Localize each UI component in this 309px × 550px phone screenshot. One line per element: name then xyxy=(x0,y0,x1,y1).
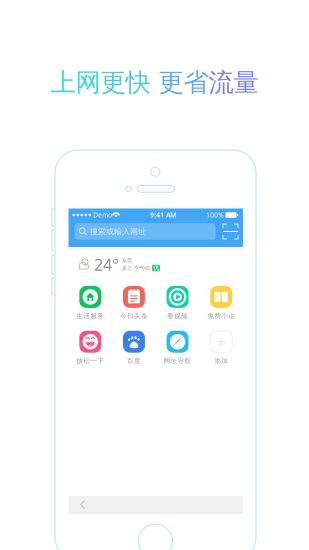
button[interactable]: 看视频 xyxy=(156,286,199,319)
staticText: 百度 xyxy=(127,357,141,365)
staticText: 搜索或输入网址 xyxy=(90,227,146,236)
staticText: 更省 xyxy=(158,67,208,98)
button[interactable]: 放松一下 xyxy=(68,331,112,364)
button[interactable]: 生活服务 xyxy=(68,286,112,319)
staticText: 24° xyxy=(94,254,119,275)
staticText: 100% xyxy=(206,211,224,219)
button[interactable]: Back xyxy=(68,496,97,513)
button[interactable]: 免费小说 xyxy=(199,286,243,319)
staticText: 多云 空气65 xyxy=(122,264,150,272)
button[interactable]: Scan QR code xyxy=(223,224,238,239)
staticText: Demo xyxy=(91,211,112,219)
button[interactable]: 今日头条 xyxy=(112,286,156,319)
staticText: 优 xyxy=(153,265,158,271)
staticText: 添加 xyxy=(214,357,228,365)
button[interactable]: 24° xyxy=(68,247,243,286)
button[interactable]: 网址导航 xyxy=(156,331,199,364)
button[interactable]: 百度 xyxy=(112,331,156,364)
staticText: 看视频 xyxy=(167,312,188,320)
staticText: 上网 xyxy=(50,67,100,98)
staticText: 9:41 AM xyxy=(150,211,176,219)
staticText: 免费小说 xyxy=(207,312,235,320)
staticText: 生活服务 xyxy=(76,312,104,320)
staticText: 放松一下 xyxy=(76,357,104,365)
staticText: 流量 xyxy=(208,67,258,98)
button[interactable]: 搜索或输入网址 xyxy=(74,223,215,240)
staticText: 更快 xyxy=(100,67,158,98)
button[interactable]: 添加 xyxy=(199,331,243,364)
staticText: 今日头条 xyxy=(120,312,148,320)
staticText: 网址导航 xyxy=(164,357,192,365)
staticText: 东莞 xyxy=(122,257,132,264)
